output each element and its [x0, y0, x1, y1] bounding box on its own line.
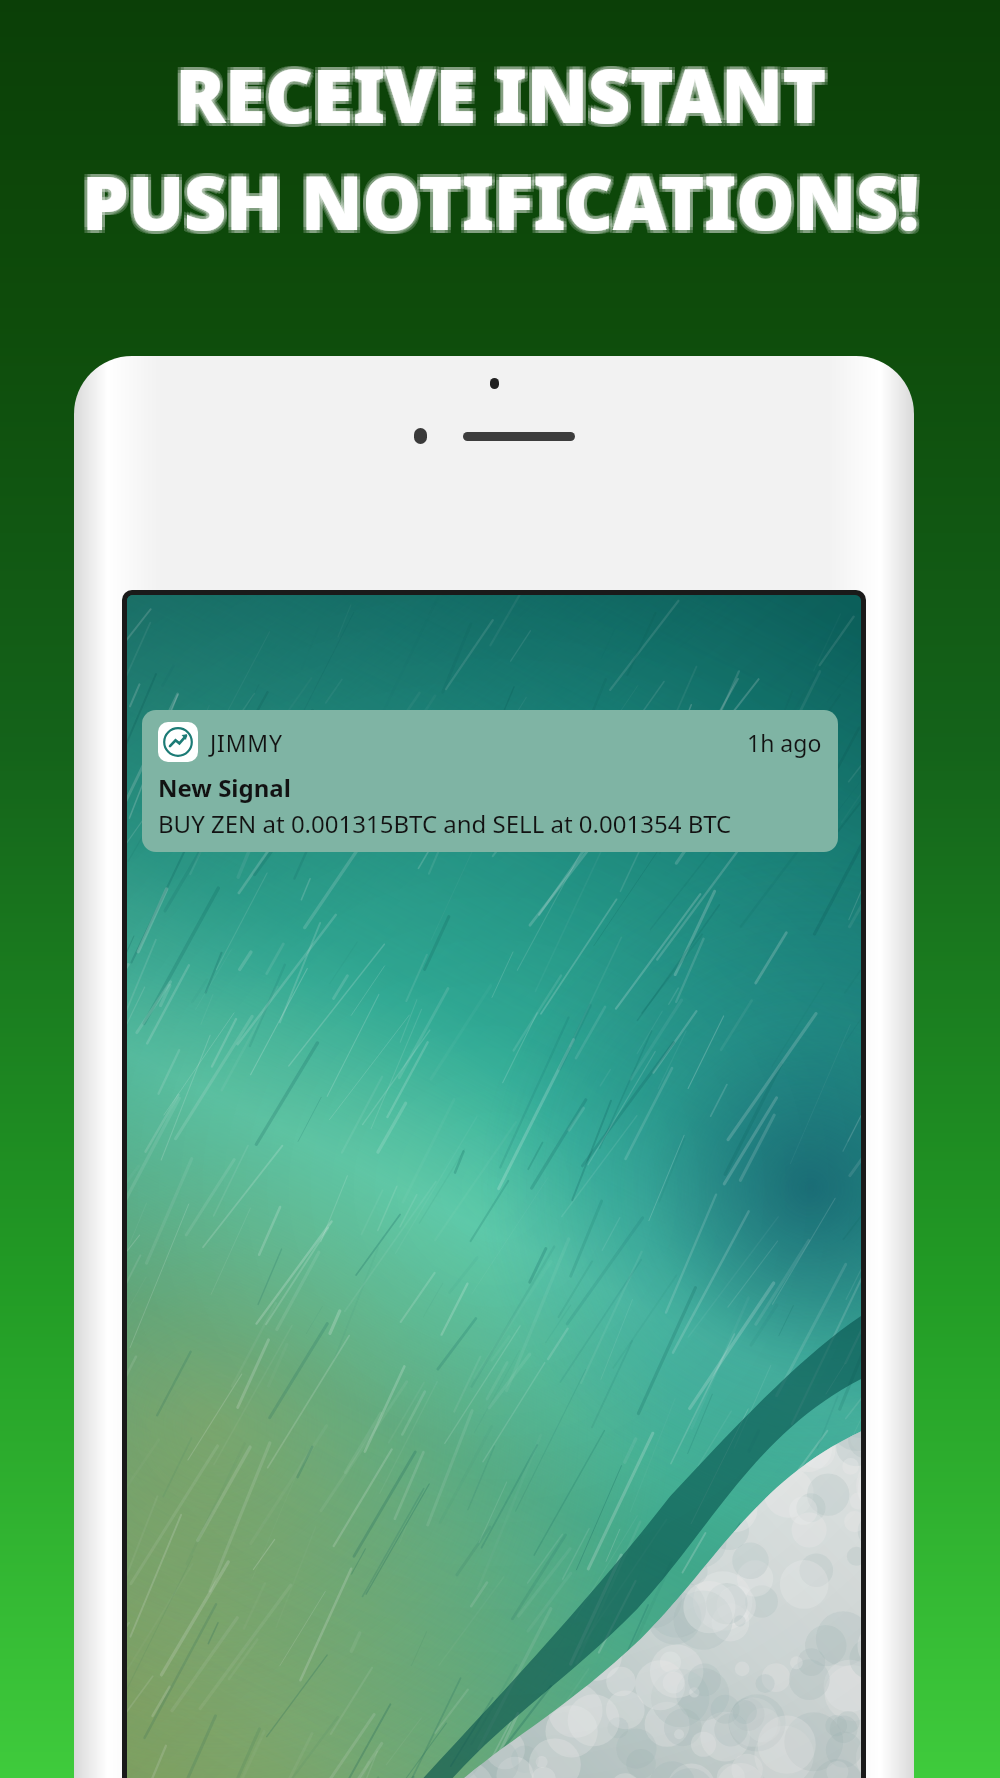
staticText: PUSH NOTIFICATIONS!: [82, 154, 919, 255]
staticText: RECEIVE INSTANT: [175, 47, 826, 148]
staticText: PUSH NOTIFICATIONS!: [82, 151, 919, 252]
staticText: RECEIVE INSTANT: [175, 44, 826, 145]
staticText: RECEIVE INSTANT: [178, 44, 829, 145]
staticText: PUSH NOTIFICATIONS!: [79, 151, 916, 252]
staticText: RECEIVE INSTANT: [172, 41, 823, 142]
staticText: BUY ZEN at 0.001315BTC and SELL at 0.001…: [158, 807, 732, 840]
staticText: PUSH NOTIFICATIONS!: [79, 148, 916, 249]
staticText: 1h ago: [747, 727, 822, 758]
staticText: PUSH NOTIFICATIONS!: [85, 154, 922, 255]
staticText: RECEIVE INSTANT: [175, 41, 826, 142]
staticText: JIMMY: [210, 727, 283, 758]
staticText: RECEIVE INSTANT: [172, 44, 823, 145]
staticText: PUSH NOTIFICATIONS!: [82, 148, 919, 249]
staticText: PUSH NOTIFICATIONS!: [79, 154, 916, 255]
staticText: RECEIVE INSTANT: [178, 41, 829, 142]
other: JIMMY app icon: [158, 722, 198, 762]
staticText: PUSH NOTIFICATIONS!: [85, 151, 922, 252]
staticText: New Signal: [158, 771, 291, 804]
staticText: PUSH NOTIFICATIONS!: [85, 148, 922, 249]
button[interactable]: JIMMY app icon: [142, 710, 838, 852]
staticText: RECEIVE INSTANT: [178, 47, 829, 148]
staticText: RECEIVE INSTANT: [172, 47, 823, 148]
